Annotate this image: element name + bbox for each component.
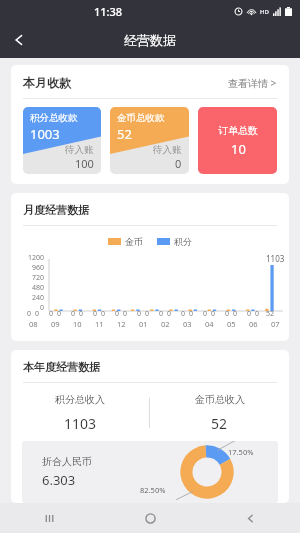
staticText: 0 bbox=[181, 309, 186, 319]
button[interactable]: 积分总收款 bbox=[23, 107, 101, 174]
staticText: 06 bbox=[249, 319, 258, 329]
staticText: 08 bbox=[29, 319, 38, 329]
button[interactable]: Back bbox=[200, 503, 300, 533]
staticText: 0 bbox=[137, 309, 142, 319]
staticText: 04 bbox=[205, 319, 214, 329]
staticText: 07 bbox=[271, 319, 280, 329]
staticText: 0 bbox=[145, 309, 150, 319]
staticText: 10 bbox=[73, 319, 82, 329]
staticText: 积分总收入 bbox=[55, 393, 105, 406]
staticText: 0 bbox=[167, 309, 172, 319]
staticText: 0 bbox=[71, 309, 76, 319]
button[interactable]: 积分总收入 bbox=[11, 393, 149, 433]
staticText: 金币 bbox=[125, 236, 143, 247]
staticText: 720 bbox=[32, 273, 45, 281]
staticText: 11 bbox=[95, 319, 104, 329]
staticText: 100 bbox=[75, 156, 94, 171]
staticText: 17.50% bbox=[228, 447, 254, 457]
staticText: 经营数据 bbox=[124, 32, 176, 48]
staticText: 480 bbox=[32, 283, 45, 291]
button[interactable]: Recents bbox=[0, 503, 100, 533]
staticText: 0 bbox=[211, 309, 216, 319]
staticText: 金币总收款 bbox=[117, 112, 165, 124]
staticText: 0 bbox=[101, 309, 106, 319]
staticText: 积分 bbox=[174, 236, 192, 247]
staticText: 6.303 bbox=[42, 471, 76, 489]
staticText: 52 bbox=[211, 414, 228, 433]
staticText: 0 bbox=[49, 309, 54, 319]
staticText: 0 bbox=[57, 309, 62, 319]
button[interactable]: 订单总数 bbox=[198, 107, 277, 174]
staticText: 03 bbox=[183, 319, 192, 329]
staticText: 0 bbox=[27, 309, 32, 319]
staticText: 本年度经营数据 bbox=[23, 360, 100, 374]
staticText: 待入账 bbox=[153, 144, 182, 156]
staticText: 1103 bbox=[64, 414, 97, 433]
button[interactable]: 查看详情 > bbox=[228, 76, 277, 90]
staticText: 1103 bbox=[266, 253, 285, 264]
staticText: 0 bbox=[93, 309, 98, 319]
staticText: 52 bbox=[266, 309, 275, 319]
staticText: 0 bbox=[123, 309, 128, 319]
staticText: 05 bbox=[227, 319, 236, 329]
button[interactable]: 金币总收入 bbox=[150, 393, 289, 433]
staticText: 11:38 bbox=[94, 4, 123, 19]
staticText: 12 bbox=[117, 319, 126, 329]
staticText: 0 bbox=[79, 309, 84, 319]
staticText: 1200 bbox=[28, 253, 45, 261]
staticText: 0 bbox=[159, 309, 164, 319]
staticText: 0 bbox=[255, 309, 260, 319]
staticText: 0 bbox=[189, 309, 194, 319]
staticText: 月度经营数据 bbox=[23, 203, 89, 217]
staticText: 02 bbox=[161, 319, 170, 329]
staticText: 金币总收入 bbox=[195, 393, 245, 406]
staticText: 0 bbox=[35, 309, 40, 319]
staticText: 0 bbox=[225, 309, 230, 319]
staticText: 960 bbox=[32, 263, 45, 271]
staticText: 0 bbox=[175, 156, 182, 171]
staticText: 订单总数 bbox=[218, 124, 258, 137]
staticText: 82.50% bbox=[140, 485, 166, 495]
staticText: 0 bbox=[233, 309, 238, 319]
staticText: 01 bbox=[139, 319, 148, 329]
staticText: 240 bbox=[32, 293, 45, 301]
staticText: 查看详情 > bbox=[228, 76, 277, 90]
staticText: 待入账 bbox=[65, 144, 94, 156]
staticText: 积分总收款 bbox=[30, 112, 78, 124]
staticText: HD bbox=[260, 8, 269, 16]
staticText: 52 bbox=[117, 125, 132, 143]
staticText: 0 bbox=[40, 303, 45, 311]
staticText: 09 bbox=[51, 319, 60, 329]
staticText: 折合人民币 bbox=[42, 455, 92, 468]
staticText: 0 bbox=[203, 309, 208, 319]
staticText: 0 bbox=[247, 309, 252, 319]
button[interactable]: 金币总收款 bbox=[110, 107, 189, 174]
button[interactable]: Back bbox=[0, 22, 38, 58]
staticText: 10 bbox=[231, 140, 246, 158]
staticText: 0 bbox=[115, 309, 120, 319]
button[interactable]: Home bbox=[100, 503, 200, 533]
staticText: 1003 bbox=[30, 125, 60, 143]
staticText: 本月收款 bbox=[23, 75, 71, 90]
